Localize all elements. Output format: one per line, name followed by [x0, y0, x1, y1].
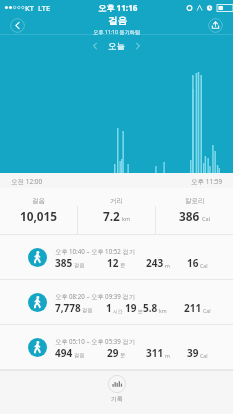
button[interactable]: Back: [10, 18, 25, 33]
staticText: 16: [187, 256, 199, 270]
staticText: 시간: [113, 308, 123, 314]
button[interactable]: Next day: [131, 39, 145, 53]
button[interactable]: Share: [208, 18, 223, 33]
staticText: 분: [120, 262, 126, 269]
staticText: 기록: [111, 395, 123, 403]
staticText: 386: [179, 208, 200, 224]
staticText: Cal: [200, 262, 208, 269]
staticText: 오후 10:40 – 오후 10:52 걷기: [55, 247, 135, 255]
staticText: 걸음: [32, 197, 45, 205]
staticText: Cal: [200, 352, 208, 359]
staticText: 거리: [110, 197, 123, 205]
staticText: 1: [106, 301, 112, 315]
staticText: 385: [55, 256, 73, 270]
staticText: 분: [120, 352, 126, 359]
staticText: 걸음: [108, 15, 127, 27]
staticText: 19: [125, 301, 137, 315]
staticText: 오후 05:10 – 오후 05:39 걷기: [55, 337, 135, 345]
button[interactable]: 걸음: [0, 197, 77, 224]
staticText: km: [122, 215, 131, 223]
staticText: 211: [184, 301, 202, 315]
staticText: km: [159, 307, 167, 314]
staticText: KT: [25, 3, 34, 13]
button[interactable]: 오후 05:10 – 오후 05:39 걷기: [0, 325, 233, 370]
staticText: 7,778: [55, 301, 81, 315]
staticText: 걸음: [82, 307, 93, 314]
staticText: 10,015: [20, 208, 58, 224]
button[interactable]: 거리: [78, 197, 155, 224]
button[interactable]: 오후 10:40 – 오후 10:52 걷기: [0, 235, 233, 280]
staticText: 걸음: [74, 262, 85, 269]
staticText: 39: [187, 346, 199, 360]
staticText: 311: [146, 346, 164, 360]
button[interactable]: 오후 08:20 – 오후 09:39 걷기: [0, 280, 233, 325]
staticText: 오후 11:59: [191, 177, 223, 186]
staticText: 분: [138, 308, 143, 314]
staticText: 29: [107, 346, 119, 360]
staticText: m: [165, 352, 170, 359]
staticText: 7.2: [103, 208, 120, 224]
staticText: 오후 08:20 – 오후 09:39 걷기: [55, 292, 135, 300]
staticText: 칼로리: [185, 197, 205, 205]
staticText: m: [165, 262, 170, 269]
button[interactable]: 기록: [108, 371, 126, 403]
staticText: 오후 11:16: [98, 2, 138, 13]
staticText: Cal: [202, 215, 211, 223]
staticText: 243: [146, 256, 164, 270]
staticText: 12: [107, 256, 119, 270]
staticText: LTE: [38, 3, 51, 13]
staticText: 494: [55, 346, 73, 360]
staticText: 오후 11:10 동기화됨: [93, 28, 141, 35]
button[interactable]: 오늘: [108, 41, 125, 52]
staticText: 5.8: [143, 301, 158, 315]
staticText: 오전 12:00: [11, 177, 43, 186]
button[interactable]: Previous day: [88, 39, 102, 53]
staticText: 걸음: [74, 352, 85, 359]
staticText: Cal: [203, 307, 211, 314]
button[interactable]: 칼로리: [156, 197, 233, 224]
